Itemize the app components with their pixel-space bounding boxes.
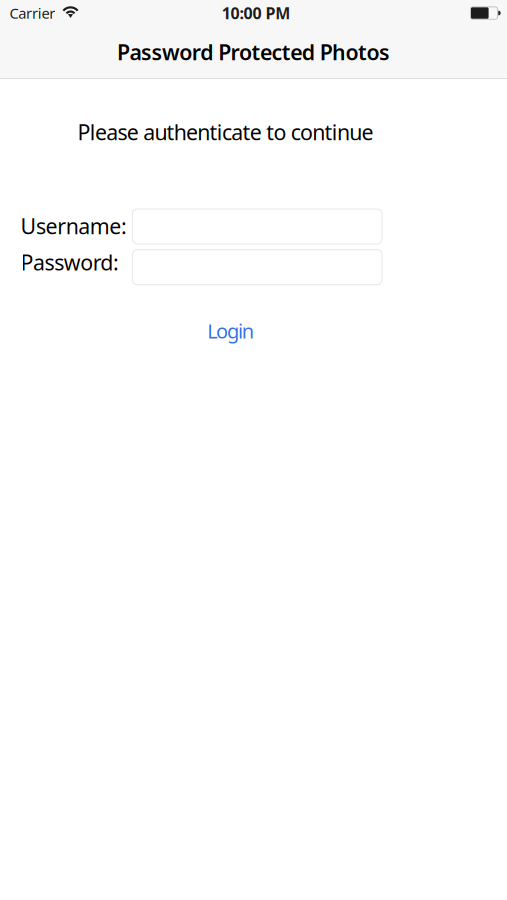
staticText: Password Protected Photos	[117, 38, 390, 66]
staticText: 10:00 PM	[222, 2, 290, 24]
staticText: Carrier	[9, 3, 55, 23]
button[interactable]: Password text field	[132, 250, 382, 285]
staticText: Please authenticate to continue	[77, 118, 373, 146]
staticText: Username:	[20, 212, 127, 240]
button[interactable]: Login	[186, 316, 274, 346]
staticText: Login	[207, 317, 254, 344]
staticText: Password:	[20, 248, 119, 276]
button[interactable]: Username text field	[132, 209, 382, 244]
